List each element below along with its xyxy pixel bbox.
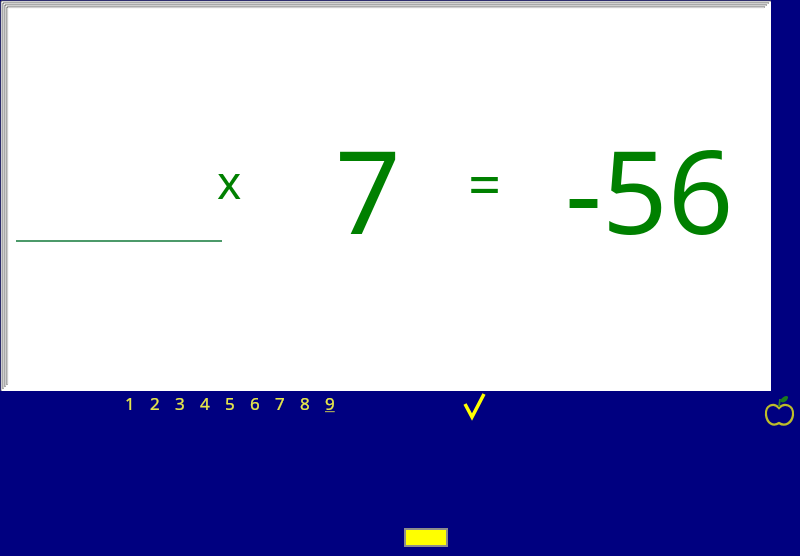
staticText: 3 [175, 392, 185, 414]
staticText: 5 [225, 392, 235, 414]
button[interactable]: 7 [267, 392, 292, 414]
staticText: 7 [335, 111, 401, 268]
button[interactable]: 4 [192, 392, 217, 414]
staticText: 6 [250, 392, 260, 414]
staticText: = [468, 144, 502, 223]
button[interactable]: 2 [142, 392, 167, 414]
button[interactable]: Apple [762, 394, 798, 430]
staticText: 8 [300, 392, 310, 414]
button[interactable]: 1 [117, 392, 142, 414]
button[interactable]: 9 [317, 392, 342, 414]
staticText: 9 [325, 392, 335, 414]
staticText: 4 [200, 392, 210, 414]
staticText: 2 [150, 392, 160, 414]
button[interactable]: Check answer [459, 393, 489, 423]
button[interactable]: 6 [242, 392, 267, 414]
staticText: 1 [125, 392, 135, 414]
staticText: x [217, 150, 242, 213]
staticText: 7 [275, 392, 285, 414]
button[interactable]: 3 [167, 392, 192, 414]
button[interactable]: 8 [292, 392, 317, 414]
button[interactable]: 5 [217, 392, 242, 414]
staticText: -56 [565, 111, 734, 268]
